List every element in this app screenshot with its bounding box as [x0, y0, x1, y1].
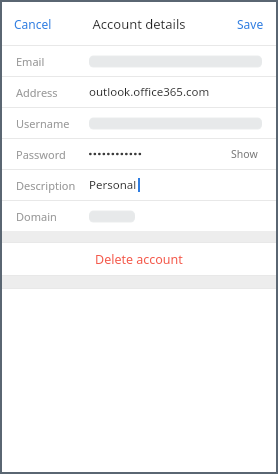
- button[interactable]: Address: [2, 77, 276, 107]
- button[interactable]: Password: [2, 139, 276, 169]
- button[interactable]: Save: [225, 8, 276, 40]
- staticText: Description: [16, 178, 89, 193]
- button[interactable]: Delete account: [2, 243, 276, 275]
- button[interactable]: Domain: [2, 201, 276, 231]
- button[interactable]: Username: [2, 108, 276, 138]
- button[interactable]: Cancel: [2, 8, 64, 40]
- staticText: Username: [16, 116, 89, 131]
- staticText: Delete account: [95, 251, 183, 268]
- button[interactable]: Show: [227, 143, 262, 165]
- staticText: Personal: [89, 177, 137, 193]
- staticText: outlook.office365.com: [89, 84, 210, 100]
- staticText: Address: [16, 85, 89, 100]
- staticText: Email: [16, 54, 89, 69]
- staticText: Domain: [16, 209, 89, 224]
- button[interactable]: Description: [2, 170, 276, 200]
- staticText: Password: [16, 147, 89, 162]
- button[interactable]: Email: [2, 46, 276, 76]
- staticText: Account details: [92, 15, 186, 33]
